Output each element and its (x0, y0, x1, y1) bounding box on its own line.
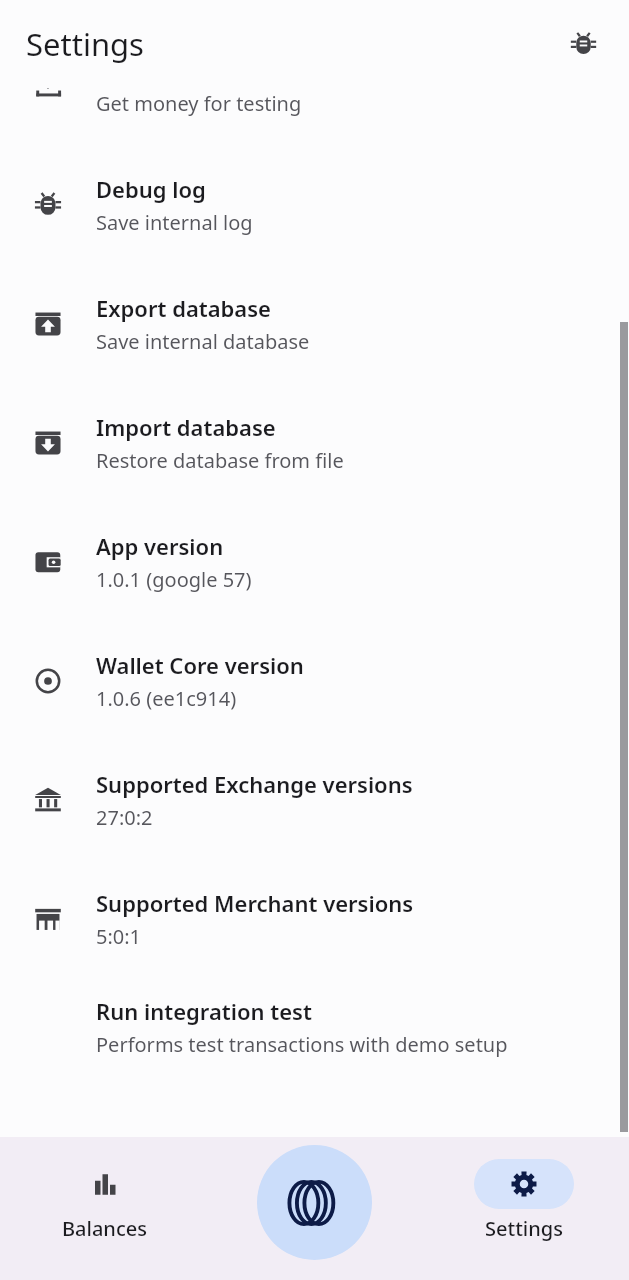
staticText: Settings (26, 23, 144, 65)
button[interactable]: App version (0, 502, 629, 621)
staticText: 1.0.1 (google 57) (96, 566, 252, 593)
staticText: App version (96, 531, 224, 561)
button[interactable]: Debug (551, 12, 615, 76)
button[interactable]: Supported Merchant versions (0, 859, 629, 978)
staticText: Wallet Core version (96, 650, 304, 680)
button[interactable]: Debug log (0, 145, 629, 264)
button[interactable]: Import database (0, 383, 629, 502)
staticText: Save internal database (96, 328, 310, 355)
staticText: Get money for testing (96, 90, 302, 117)
staticText: 27:0:2 (96, 804, 153, 831)
staticText: Restore database from file (96, 447, 344, 474)
staticText: Debug log (96, 174, 206, 204)
button[interactable]: Wallet Core version (0, 621, 629, 740)
staticText: Balances (62, 1215, 147, 1242)
button[interactable]: Taler (257, 1145, 372, 1260)
staticText: Supported Merchant versions (96, 888, 414, 918)
staticText: Run integration test (96, 996, 312, 1026)
staticText: Settings (485, 1215, 563, 1242)
button[interactable]: Settings (419, 1159, 629, 1242)
staticText: Supported Exchange versions (96, 769, 413, 799)
staticText: Save internal log (96, 209, 253, 236)
staticText: Export database (96, 293, 271, 323)
staticText: Import database (96, 412, 276, 442)
staticText: Performs test transactions with demo set… (96, 1031, 508, 1058)
button[interactable]: Supported Exchange versions (0, 740, 629, 859)
button[interactable]: Export database (0, 264, 629, 383)
button[interactable]: Withdraw test money (0, 88, 629, 145)
button[interactable]: Run integration test (0, 978, 629, 1075)
staticText: 1.0.6 (ee1c914) (96, 685, 237, 712)
button[interactable]: Balances (0, 1159, 209, 1242)
staticText: 5:0:1 (96, 923, 142, 950)
